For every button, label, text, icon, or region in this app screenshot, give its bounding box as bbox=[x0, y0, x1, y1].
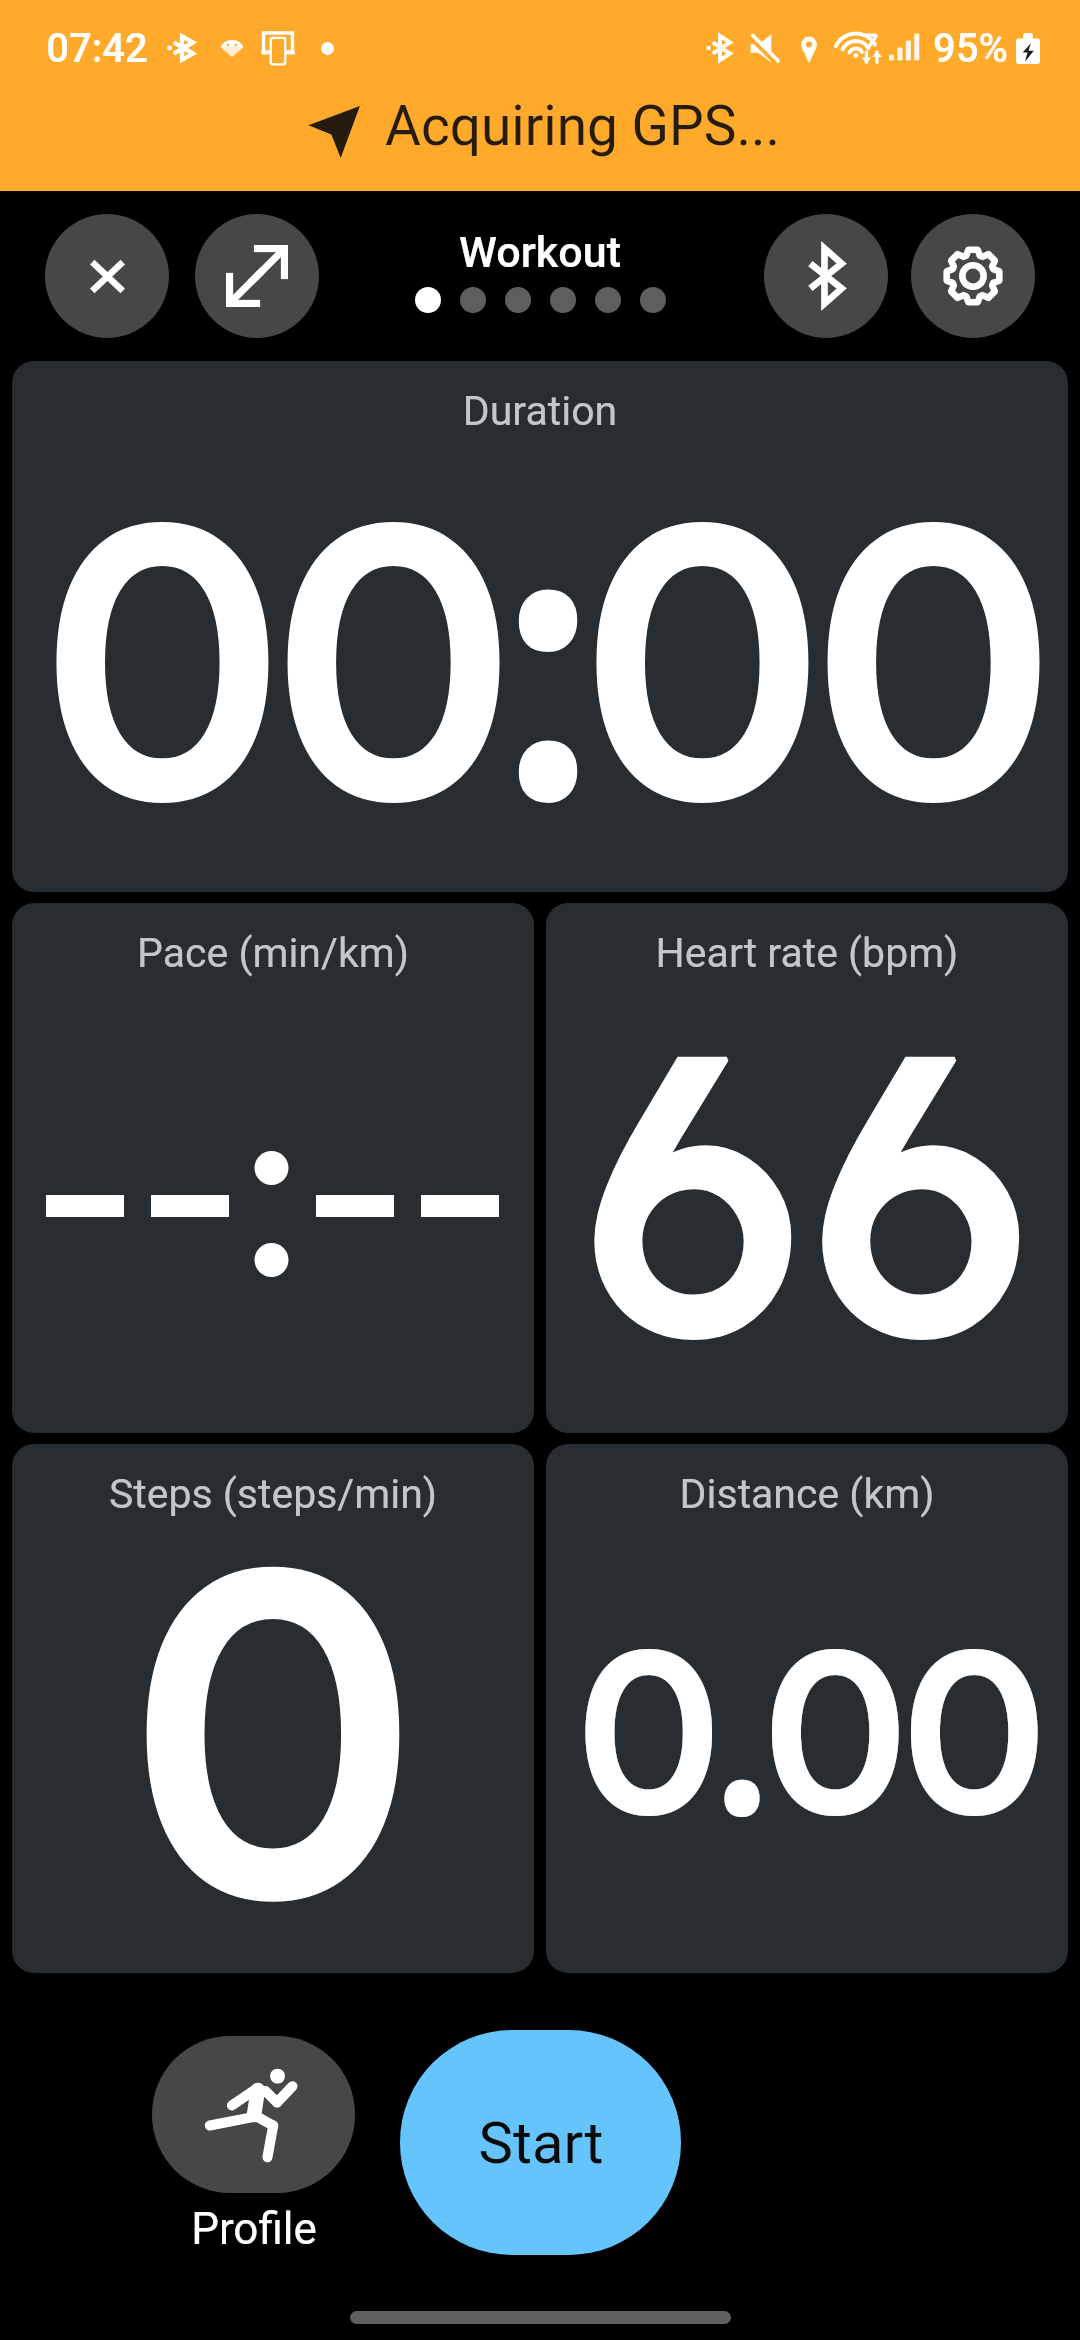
staticText: Heart rate (bpm) bbox=[546, 929, 1068, 977]
staticText: Pace (min/km) bbox=[12, 929, 534, 977]
staticText: 66 bbox=[579, 942, 1035, 1433]
staticText: Duration bbox=[12, 387, 1068, 435]
button[interactable]: 0.00 bbox=[546, 1444, 1068, 1973]
button[interactable]: Settings bbox=[911, 214, 1035, 338]
staticText: Distance (km) bbox=[546, 1470, 1068, 1518]
button[interactable]: 0 bbox=[12, 1444, 534, 1973]
staticText: Steps (steps/min) bbox=[12, 1470, 534, 1518]
staticText: 00:00 bbox=[39, 409, 1042, 892]
staticText: 07:42 bbox=[46, 25, 148, 72]
staticText: 95% bbox=[933, 25, 1008, 72]
button[interactable]: Pace (min/km) bbox=[12, 903, 534, 1433]
staticText: Profile bbox=[191, 2203, 317, 2255]
staticText: 0 bbox=[126, 1444, 420, 1961]
button[interactable]: Close bbox=[45, 214, 169, 338]
button[interactable]: 00:00 bbox=[12, 361, 1068, 892]
staticText: Workout bbox=[459, 227, 621, 277]
button[interactable]: Bluetooth bbox=[764, 214, 888, 338]
staticText: Acquiring GPS... bbox=[385, 94, 780, 158]
button[interactable]: 66 bbox=[546, 903, 1068, 1433]
button[interactable]: Profile bbox=[152, 2036, 355, 2193]
button[interactable]: Full screen bbox=[195, 214, 319, 338]
staticText: 0.00 bbox=[575, 1581, 1040, 1872]
button[interactable]: Start bbox=[400, 2030, 681, 2255]
staticText: Start bbox=[478, 2109, 604, 2177]
